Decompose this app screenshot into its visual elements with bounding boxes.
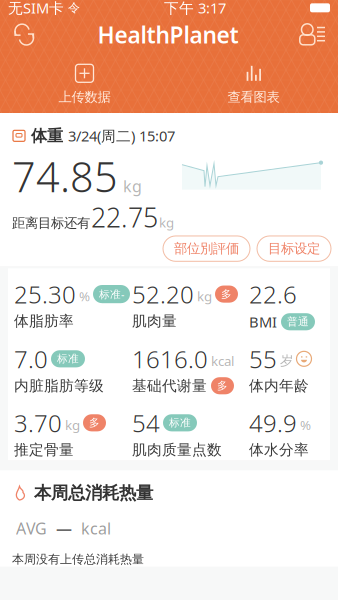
staticText: 体水分率 [249, 441, 309, 459]
staticText: BMI [249, 312, 277, 331]
staticText: 本周总消耗热量 [34, 482, 153, 504]
staticText: 体脂肪率 [14, 312, 74, 330]
staticText: 部位別評価 [174, 240, 239, 257]
staticText: 令 [68, 0, 80, 15]
staticText: 推定骨量 [14, 441, 74, 459]
staticText: % [79, 287, 90, 305]
staticText: 岁 [280, 353, 293, 369]
staticText: % [300, 416, 311, 434]
staticText: 49.9 [249, 407, 297, 439]
staticText: kcal [81, 518, 111, 539]
staticText: 普通 [287, 315, 309, 328]
staticText: 1616.0 [132, 343, 208, 375]
staticText: 距离目标还有 [12, 215, 90, 231]
staticText: kg [65, 416, 80, 434]
staticText: — [56, 518, 72, 539]
staticText: HealthPlanet [97, 20, 238, 50]
staticText: 55 [249, 343, 277, 375]
staticText: kcal [211, 352, 234, 370]
staticText: AVG [16, 518, 47, 539]
staticText: 内脏脂肪等级 [14, 377, 104, 395]
staticText: 查看图表 [227, 89, 279, 105]
staticText: 目标设定 [268, 240, 320, 257]
staticText: 25.30 [14, 278, 76, 310]
staticText [64, 0, 68, 18]
staticText: 3.70 [14, 407, 62, 439]
staticText: 74.85 [12, 149, 118, 204]
staticText: 下午 3:17 [164, 0, 226, 18]
staticText: 标准 [57, 352, 79, 365]
staticText: 3/24(周二) 15:07 [68, 126, 175, 146]
staticText: 体重 [31, 126, 63, 146]
staticText: 肌肉质量点数 [132, 441, 222, 459]
button[interactable]: Refresh [12, 23, 36, 47]
staticText: kg [197, 287, 212, 305]
staticText: 基础代谢量 [132, 377, 207, 395]
button[interactable]: Upload data [0, 60, 169, 109]
staticText: 52.20 [132, 278, 194, 310]
staticText: 本周没有上传总消耗热量 [12, 552, 144, 567]
staticText: 无SIM卡 [8, 0, 64, 18]
staticText: 22.75 [91, 199, 158, 235]
staticText: 多 [89, 416, 100, 429]
staticText: 22.6 [249, 278, 297, 310]
staticText: 肌肉量 [132, 312, 177, 330]
button[interactable]: Profile [300, 23, 326, 46]
button[interactable]: 部位別評価 [163, 236, 250, 261]
staticText: 7.0 [14, 343, 48, 375]
staticText: 标准 [169, 416, 191, 429]
staticText: 多 [221, 287, 232, 301]
staticText: kg [159, 214, 174, 231]
button[interactable]: 目标设定 [257, 236, 331, 261]
button[interactable]: View charts [169, 60, 338, 109]
staticText: 体内年龄 [249, 377, 309, 395]
staticText: kg [123, 175, 142, 196]
staticText: 54 [132, 407, 160, 439]
staticText: 上传数据 [58, 89, 110, 105]
staticText: 标准- [99, 287, 124, 301]
staticText: 多 [217, 379, 228, 392]
